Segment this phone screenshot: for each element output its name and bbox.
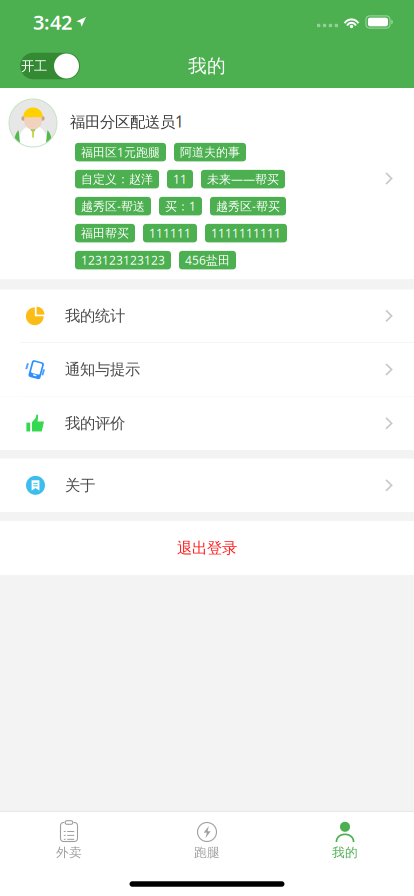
staticText: 通知与提示 (65, 360, 140, 379)
button[interactable]: 跑腿 (138, 812, 276, 862)
staticText: 自定义：赵洋 (81, 172, 153, 187)
staticText: 111111 (149, 225, 191, 241)
staticText: 买：1 (165, 198, 196, 214)
button[interactable]: 通知与提示 (0, 343, 414, 397)
staticText: 未来——帮买 (207, 171, 279, 187)
staticText: 123123123123 (81, 252, 165, 268)
staticText: 11 (173, 171, 187, 187)
staticText: 外卖 (56, 844, 82, 860)
staticText: 跑腿 (194, 844, 220, 860)
button[interactable]: 外卖 (0, 812, 138, 862)
staticText: 福田区1元跑腿 (81, 144, 160, 160)
staticText: 阿道夫的事 (180, 145, 240, 160)
staticText: 我的 (188, 54, 226, 78)
staticText: 福田帮买 (81, 226, 129, 241)
button[interactable]: 我的评价 (0, 397, 414, 450)
staticText: 越秀区-帮买 (216, 198, 280, 214)
staticText: 退出登录 (177, 538, 237, 558)
staticText: 我的 (332, 844, 358, 860)
button[interactable]: 开工 (20, 53, 80, 79)
staticText: 福田分区配送员1 (70, 111, 184, 132)
staticText: 3:42 (33, 9, 72, 35)
staticText: 越秀区-帮送 (81, 198, 145, 214)
staticText: 关于 (65, 476, 95, 495)
button[interactable]: 关于 (0, 459, 414, 512)
staticText: 1111111111 (211, 225, 281, 241)
button[interactable]: 我的统计 (0, 289, 414, 343)
staticText: 我的评价 (65, 414, 125, 433)
staticText: 我的统计 (65, 306, 125, 325)
button[interactable]: 我的 (276, 812, 414, 862)
button[interactable]: 退出登录 (0, 521, 414, 575)
staticText: 开工 (21, 58, 47, 74)
button[interactable]: 福田分区配送员1 (0, 88, 414, 279)
staticText: 456盐田 (185, 252, 230, 268)
